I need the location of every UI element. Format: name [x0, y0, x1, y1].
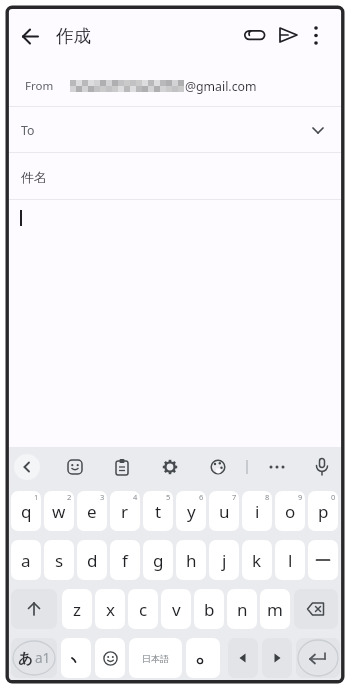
button[interactable]: b	[194, 589, 224, 629]
staticText: o	[285, 500, 296, 523]
staticText: l	[288, 549, 293, 572]
staticText: あ	[18, 649, 33, 667]
button[interactable]: i	[242, 491, 272, 531]
staticText: i	[255, 500, 260, 523]
button[interactable]	[315, 458, 329, 476]
button[interactable]: e	[77, 491, 107, 531]
staticText: k	[252, 549, 262, 572]
button[interactable]	[228, 638, 258, 678]
staticText: 日本語	[142, 653, 169, 664]
staticText: j	[222, 549, 227, 572]
staticText: f	[122, 549, 128, 572]
button[interactable]: w	[44, 491, 74, 531]
button[interactable]	[9, 107, 341, 153]
staticText: From	[25, 78, 54, 94]
button[interactable]	[262, 638, 292, 678]
staticText: @gmail.com	[185, 78, 257, 94]
staticText: 0	[331, 492, 336, 502]
staticText: 4	[133, 492, 138, 502]
staticText: 1	[34, 492, 39, 502]
button[interactable]: y	[176, 491, 206, 531]
staticText: 3	[100, 492, 105, 502]
button[interactable]: j	[209, 540, 239, 580]
button[interactable]	[95, 638, 125, 678]
staticText: q	[21, 500, 32, 523]
button[interactable]	[278, 26, 299, 44]
staticText: d	[87, 549, 98, 572]
staticText: c	[139, 598, 148, 621]
staticText: 6	[199, 492, 204, 502]
button[interactable]: m	[260, 589, 290, 629]
button[interactable]: u	[209, 491, 239, 531]
button[interactable]: o	[275, 491, 305, 531]
button[interactable]	[296, 638, 340, 678]
button[interactable]	[294, 589, 338, 629]
button[interactable]	[210, 459, 226, 475]
button[interactable]: n	[227, 589, 257, 629]
staticText: p	[318, 500, 329, 523]
button[interactable]: d	[77, 540, 107, 580]
button[interactable]: あ	[11, 638, 57, 678]
button[interactable]	[21, 27, 40, 46]
staticText: 8	[265, 492, 270, 502]
staticText: 作成	[56, 25, 91, 47]
button[interactable]	[309, 25, 323, 46]
staticText: v	[172, 598, 181, 621]
button[interactable]	[162, 459, 178, 475]
staticText: u	[219, 500, 230, 523]
staticText: s	[55, 549, 64, 572]
staticText: To	[21, 122, 35, 138]
staticText: 5	[166, 492, 171, 502]
button[interactable]	[186, 638, 220, 678]
button[interactable]	[14, 454, 40, 480]
button[interactable]	[11, 589, 57, 629]
staticText: t	[155, 500, 162, 523]
staticText: m	[267, 598, 283, 621]
button[interactable]: x	[95, 589, 125, 629]
button[interactable]: t	[143, 491, 173, 531]
staticText: a	[21, 549, 31, 572]
staticText: n	[237, 598, 248, 621]
staticText: g	[153, 549, 164, 572]
button[interactable]: 日本語	[129, 638, 182, 678]
button[interactable]	[115, 459, 129, 476]
button[interactable]	[67, 459, 83, 475]
button[interactable]: r	[110, 491, 140, 531]
staticText: 9	[298, 492, 303, 502]
button[interactable]: v	[161, 589, 191, 629]
button[interactable]	[268, 464, 286, 470]
staticText: r	[121, 500, 129, 523]
button[interactable]: c	[128, 589, 158, 629]
staticText: 2	[67, 492, 72, 502]
button[interactable]: z	[62, 589, 92, 629]
button[interactable]: l	[275, 540, 305, 580]
staticText: 7	[232, 492, 237, 502]
button[interactable]	[243, 26, 266, 44]
button[interactable]: p	[308, 491, 338, 531]
staticText: e	[87, 500, 97, 523]
button[interactable]: q	[11, 491, 41, 531]
button[interactable]: g	[143, 540, 173, 580]
button[interactable]: k	[242, 540, 272, 580]
staticText: x	[106, 598, 115, 621]
staticText: a1	[35, 649, 51, 667]
staticText: z	[73, 598, 81, 621]
button[interactable]: h	[176, 540, 206, 580]
button[interactable]	[61, 638, 91, 678]
button[interactable]: s	[44, 540, 74, 580]
staticText: 件名	[21, 169, 47, 185]
staticText: w	[52, 500, 66, 523]
button[interactable]	[308, 540, 338, 580]
staticText: y	[187, 500, 196, 523]
button[interactable]: a	[11, 540, 41, 580]
button[interactable]: f	[110, 540, 140, 580]
staticText: h	[186, 549, 197, 572]
staticText: b	[204, 598, 215, 621]
button[interactable]	[9, 153, 341, 199]
